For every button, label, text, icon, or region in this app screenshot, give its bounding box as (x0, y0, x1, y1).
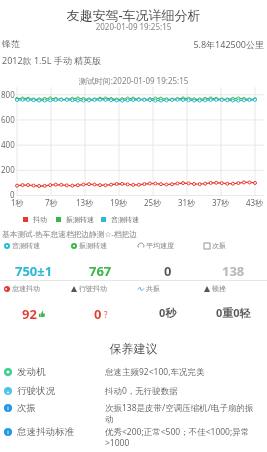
staticText: ? (104, 309, 108, 320)
staticText: 锋范 (2, 38, 20, 49)
staticText: 怠速抖动标准 (17, 426, 74, 438)
staticText: 行驶抖动 (79, 284, 107, 293)
button[interactable]: 发动机 (0, 366, 267, 378)
staticText: 音测转速 (12, 241, 40, 250)
staticText: 0 (10, 189, 15, 200)
staticText: 测试时间:2020-01-09 19:25:15 (0, 75, 267, 86)
staticText: 发动机 (17, 366, 46, 378)
staticText: 0秒 (159, 305, 177, 320)
staticText: 43秒 (246, 197, 264, 208)
button[interactable]: 行驶状况 (0, 385, 267, 397)
staticText: 400 (1, 139, 15, 150)
staticText: 振测转速 (79, 241, 107, 250)
button[interactable]: 次振 (0, 402, 267, 424)
staticText: 音测转速 (111, 215, 139, 224)
staticText: 37秒 (212, 197, 230, 208)
staticText: 13秒 (76, 197, 94, 208)
staticText: 0 (94, 305, 102, 323)
staticText: 19秒 (110, 197, 128, 208)
staticText: 次振138是皮带/空调压缩机/电子扇的振动 (105, 402, 256, 424)
staticText: 行驶状况 (17, 385, 55, 397)
staticText: 基本测试-热车怠速档把边静测☆-档把边 (2, 229, 137, 240)
staticText: 次振 (17, 402, 36, 414)
staticText: 0重0轻 (216, 305, 251, 320)
staticText: 保养建议 (0, 341, 267, 356)
staticText: 振测转速 (66, 215, 94, 224)
staticText: 1秒 (11, 197, 24, 208)
button[interactable]: 怠速抖动标准 (0, 426, 267, 449)
staticText: 次振 (212, 241, 226, 250)
staticText: 友趣安驾-车况详细分析 (0, 6, 267, 24)
staticText: 优秀<200;正常<500；不佳<1000;异常>1000 (105, 426, 256, 449)
staticText: 31秒 (178, 197, 196, 208)
staticText: 767 (89, 262, 112, 280)
staticText: 顿挫 (212, 284, 226, 293)
staticText: 抖动0，无行驶数据 (105, 385, 178, 397)
staticText: 25秒 (144, 197, 162, 208)
staticText: 92 (22, 305, 37, 323)
staticText: 5.8年142500公里 (0, 38, 264, 50)
staticText: 怠速抖动 (12, 284, 40, 293)
staticText: 0 (164, 262, 172, 280)
staticText: 共振 (146, 284, 160, 293)
staticText: 2012款 1.5L 手动 精英版 (2, 54, 102, 66)
staticText: 200 (1, 164, 15, 175)
staticText: 抖动 (33, 215, 47, 224)
staticText: 怠速主频92<100,车况完美 (105, 366, 205, 378)
staticText: 7秒 (45, 197, 58, 208)
staticText: 平均速度 (146, 241, 174, 250)
staticText: 138 (222, 262, 245, 280)
staticText: 2020-01-09 19:25:15 (0, 21, 267, 32)
staticText: 800 (1, 89, 15, 100)
staticText: 600 (1, 114, 15, 125)
staticText: 750±1 (15, 262, 53, 280)
